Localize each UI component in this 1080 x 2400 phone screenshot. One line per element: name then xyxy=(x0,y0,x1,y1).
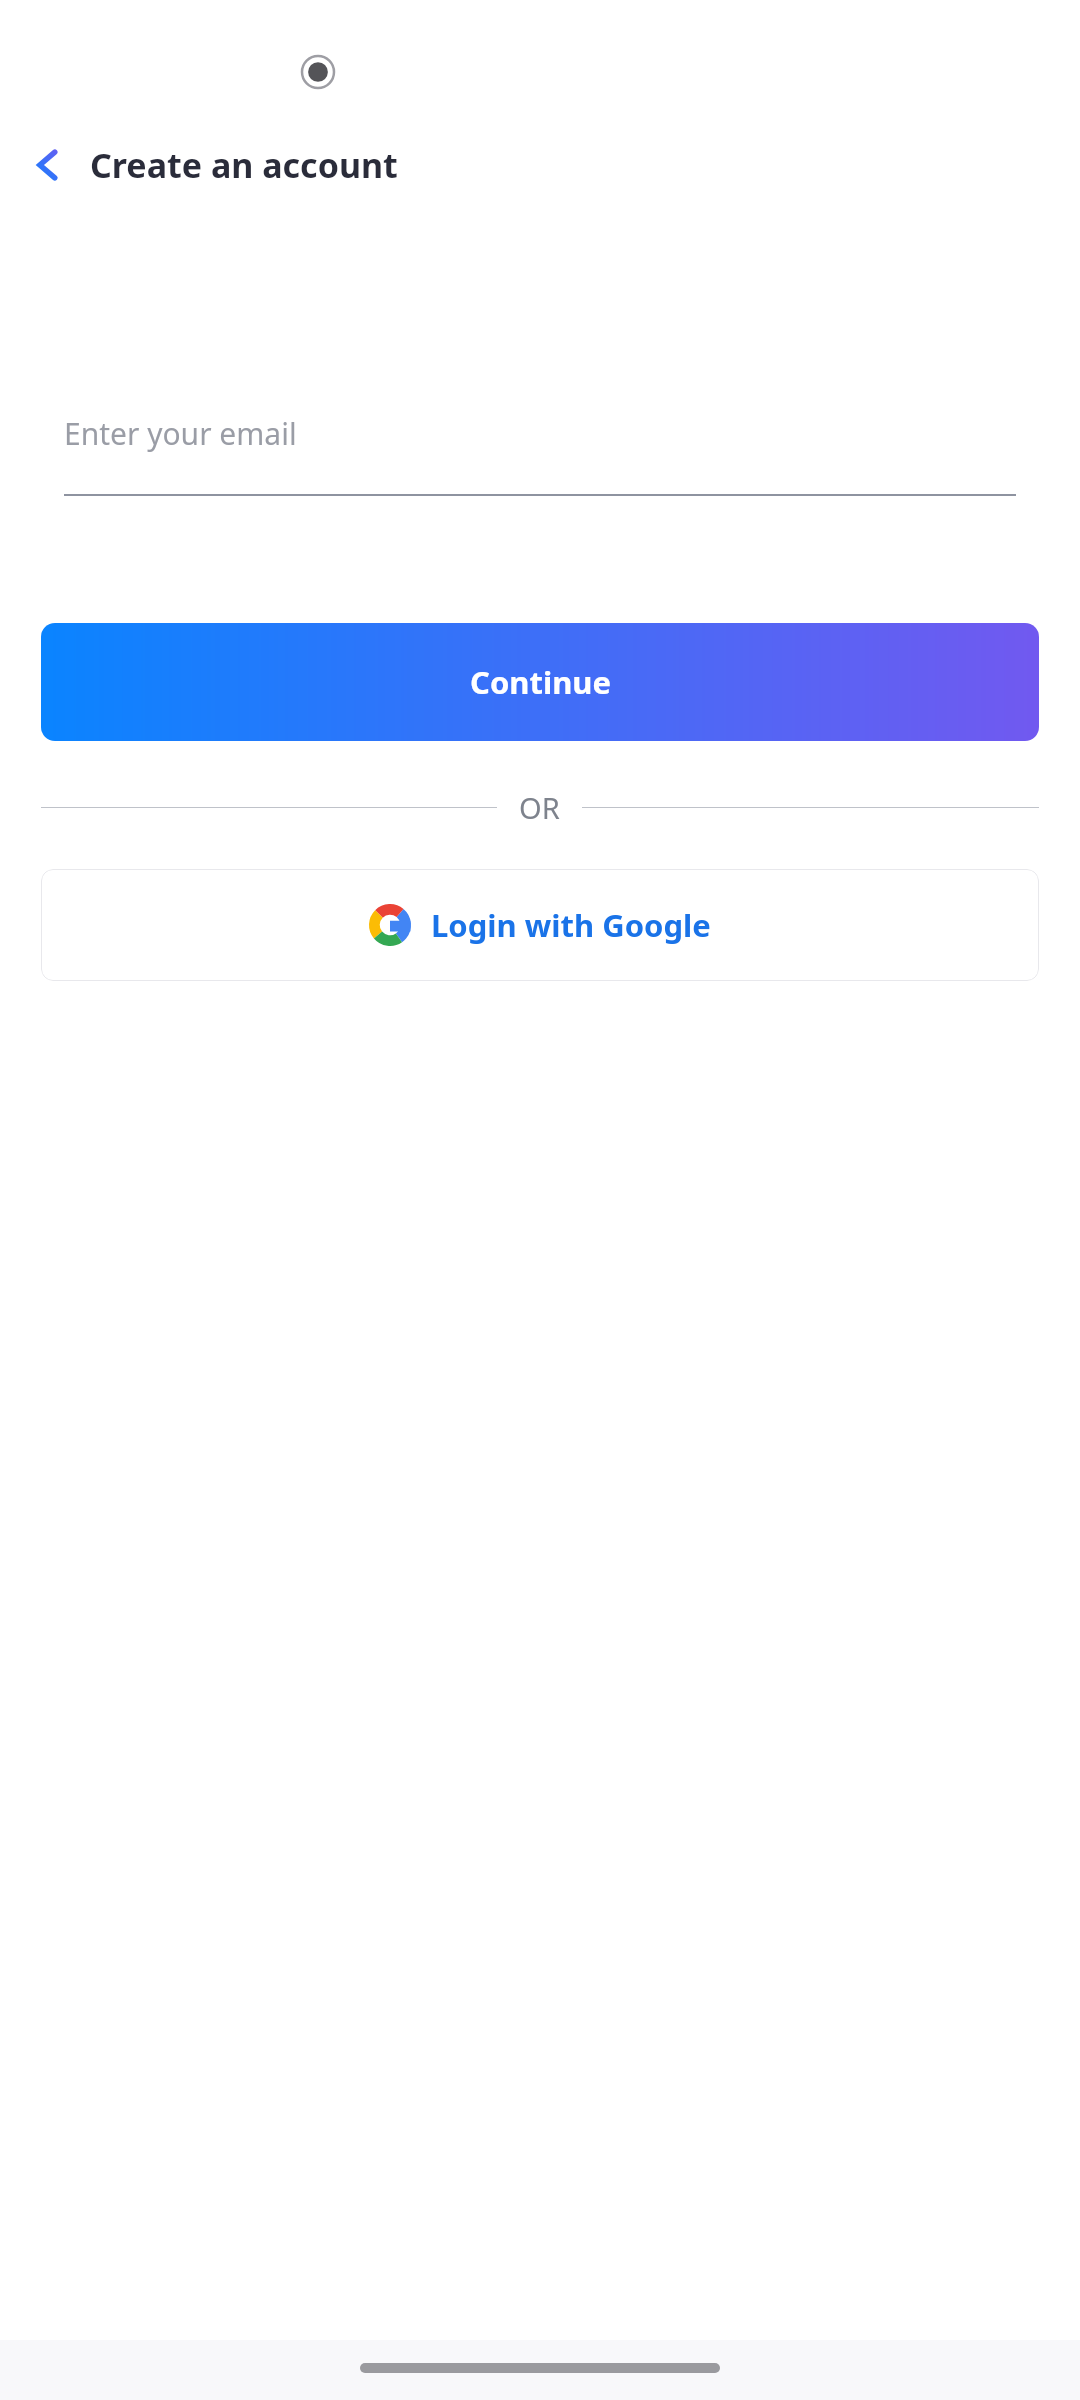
button[interactable]: Back xyxy=(20,137,76,193)
button[interactable]: Enter your email xyxy=(64,396,1016,496)
button[interactable]: Google xyxy=(41,869,1039,981)
staticText: Continue xyxy=(470,661,611,703)
staticText: OR xyxy=(519,788,560,827)
staticText: Login with Google xyxy=(431,904,711,946)
other: Google xyxy=(369,904,411,946)
staticText: Create an account xyxy=(90,142,398,188)
staticText: Enter your email xyxy=(64,413,297,454)
button[interactable]: Continue xyxy=(41,623,1039,741)
